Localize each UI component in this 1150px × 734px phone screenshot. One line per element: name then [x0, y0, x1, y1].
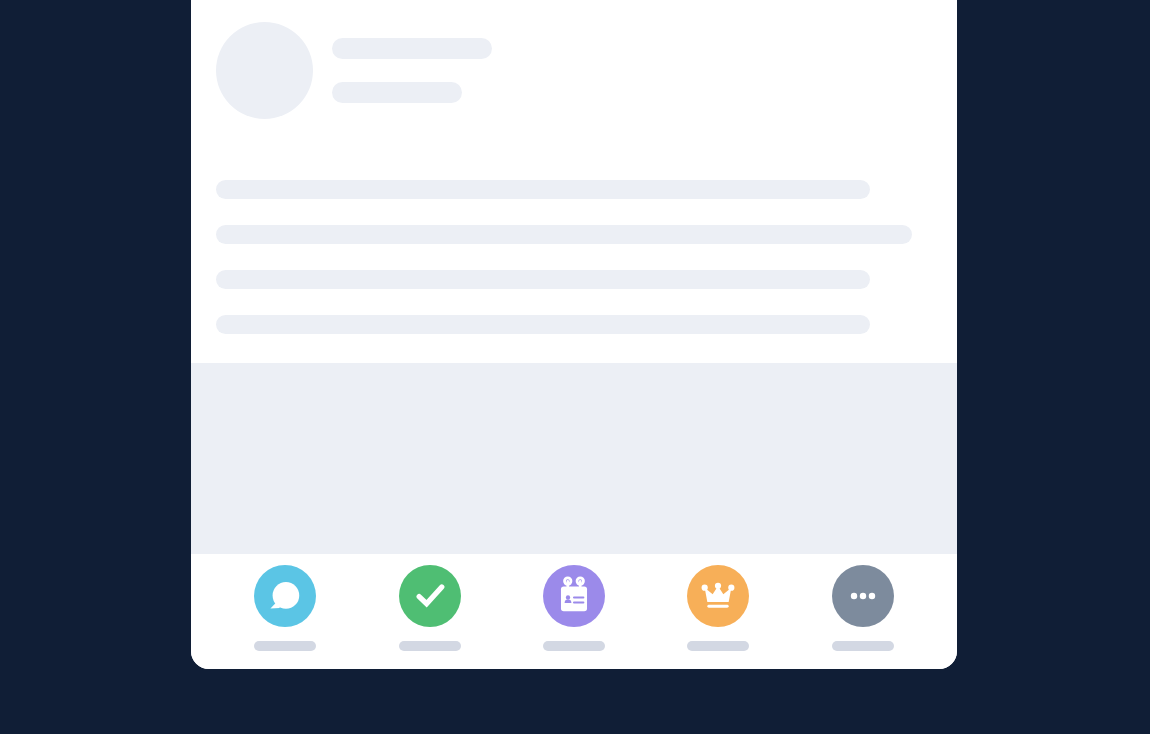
button[interactable]: Chats	[235, 554, 335, 651]
button[interactable]: More	[813, 554, 913, 651]
button[interactable]: Premium	[668, 554, 768, 651]
button[interactable]: Contacts	[524, 554, 624, 651]
button[interactable]: Tasks	[380, 554, 480, 651]
